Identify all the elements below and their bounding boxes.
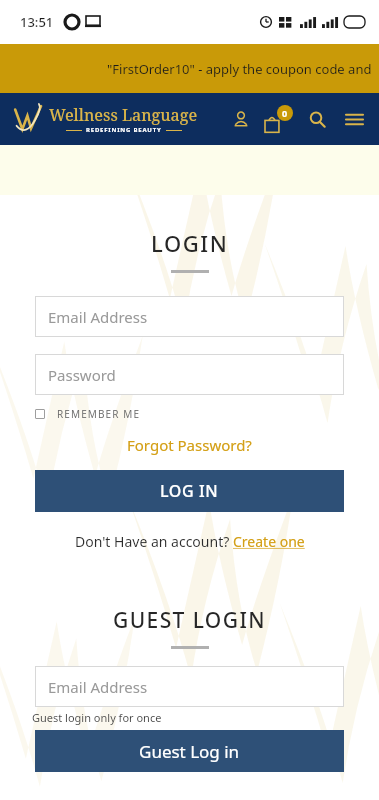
button[interactable]: Cart xyxy=(265,105,293,133)
button[interactable]: Email Address xyxy=(35,296,344,337)
button[interactable]: Create one xyxy=(233,532,305,551)
staticText: Password xyxy=(48,365,116,385)
staticText: Guest Log in xyxy=(139,740,240,763)
staticText: REDEFINING BEAUTY xyxy=(86,126,162,134)
staticText: Wellness Language xyxy=(49,104,198,126)
button[interactable]: Search xyxy=(304,106,330,132)
staticText: 0 xyxy=(282,107,288,119)
button[interactable]: REMEMBER ME xyxy=(35,407,379,421)
button[interactable]: Password xyxy=(35,354,344,395)
staticText: Email Address xyxy=(48,677,148,697)
staticText: "FirstOrder10" - apply the coupon code a… xyxy=(107,60,379,78)
staticText: REMEMBER ME xyxy=(57,407,141,421)
button[interactable]: Forgot Password? xyxy=(123,431,256,459)
staticText: LOGIN xyxy=(151,228,229,258)
staticText: Create one xyxy=(233,532,305,551)
button[interactable]: Menu xyxy=(341,106,367,132)
staticText: Forgot Password? xyxy=(127,435,252,455)
button[interactable]: LOG IN xyxy=(35,470,344,512)
staticText: Don't Have an account? xyxy=(75,532,233,551)
staticText: Guest login only for once xyxy=(32,710,162,725)
button[interactable]: Wellness Language xyxy=(13,102,198,136)
staticText: GUEST LOGIN xyxy=(113,606,266,635)
staticText: LOG IN xyxy=(160,480,219,502)
button[interactable]: Account xyxy=(228,106,254,132)
staticText: 13:51 xyxy=(20,13,54,31)
button[interactable]: Guest Log in xyxy=(35,730,344,772)
button[interactable]: Email Address xyxy=(35,666,344,707)
staticText: Email Address xyxy=(48,307,148,327)
